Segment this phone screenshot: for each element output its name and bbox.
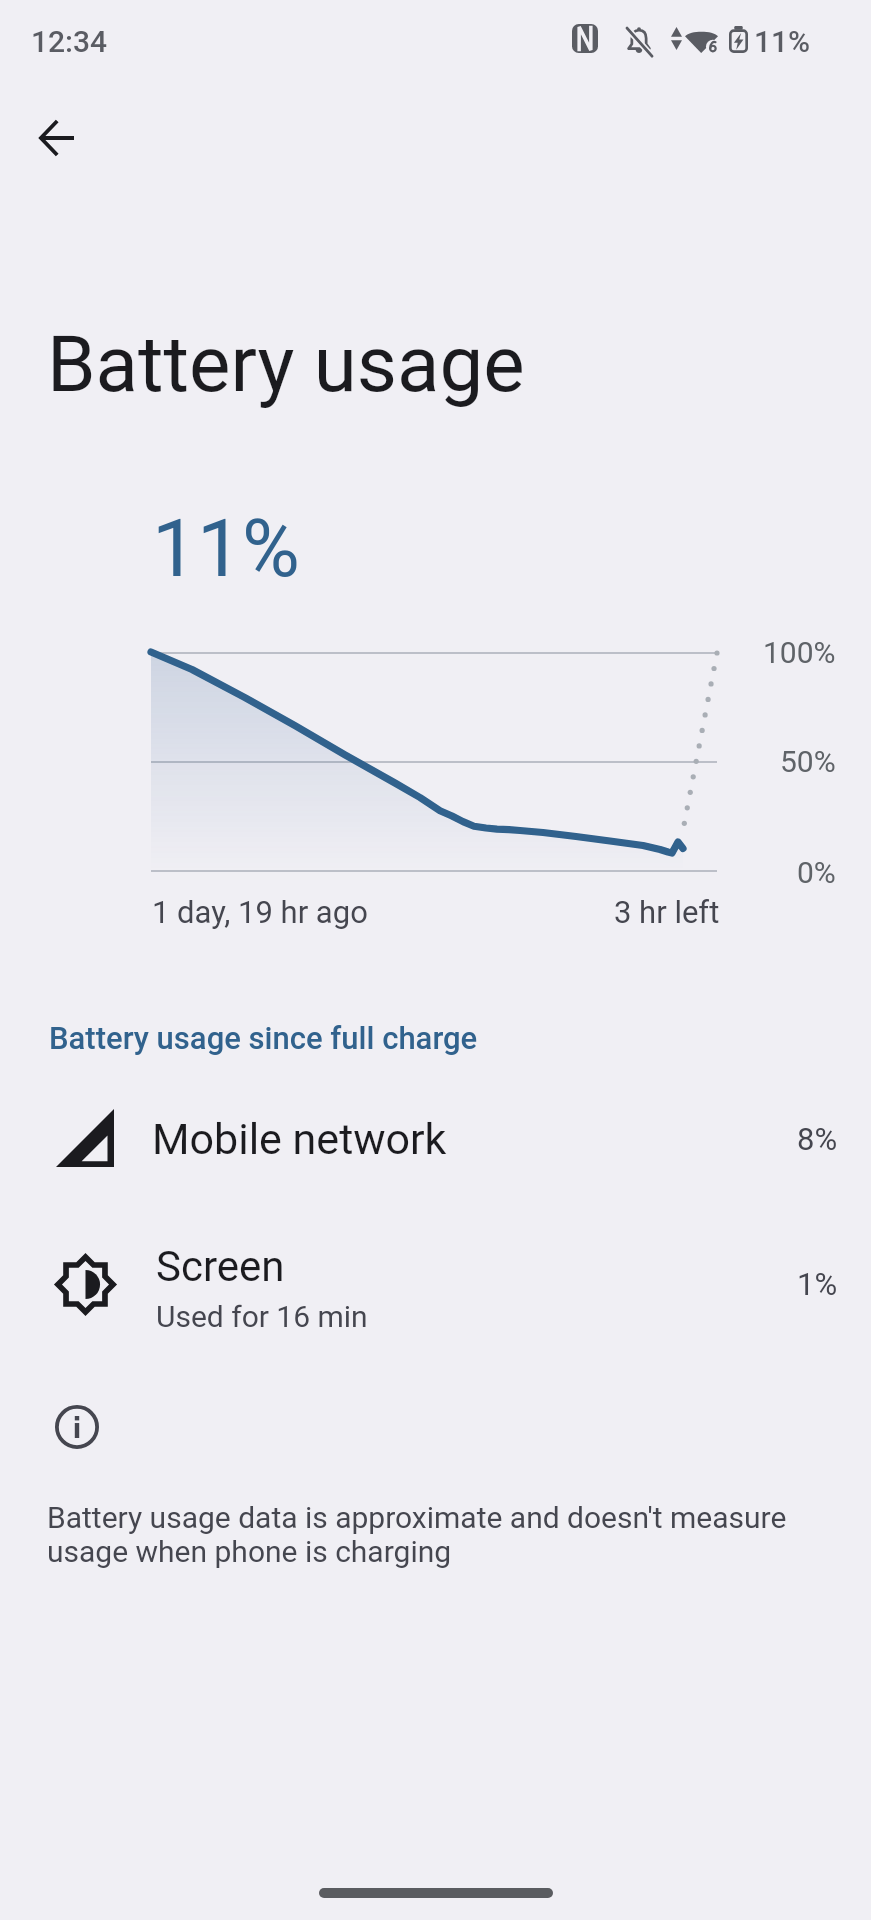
staticText: Battery usage	[47, 319, 525, 410]
staticText: 1%	[797, 1266, 838, 1302]
staticText: Screen	[156, 1242, 285, 1291]
button[interactable]: Back	[14, 96, 98, 180]
staticText: 0%	[797, 855, 836, 890]
button[interactable]: Screen	[0, 1232, 871, 1336]
button[interactable]: Mobile network	[0, 1096, 871, 1182]
staticText: %	[242, 503, 300, 596]
staticText: 1 day, 19 hr ago	[152, 894, 368, 930]
staticText: 12:34	[31, 24, 108, 59]
staticText: Mobile network	[152, 1114, 447, 1164]
staticText: Battery usage data is approximate and do…	[47, 1500, 817, 1569]
button[interactable]: Battery usage since full charge	[49, 1020, 478, 1056]
staticText: 3 hr left	[614, 894, 720, 930]
staticText: 8%	[797, 1121, 838, 1157]
staticText: 11%	[754, 24, 811, 59]
staticText: 50%	[780, 744, 836, 779]
staticText: Used for 16 min	[156, 1299, 368, 1334]
staticText: 11	[152, 502, 242, 596]
staticText: 100%	[763, 635, 836, 670]
button[interactable]: Information	[55, 1405, 99, 1449]
